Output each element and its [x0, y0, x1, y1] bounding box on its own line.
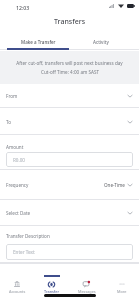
staticText: Select Date [6, 210, 31, 216]
staticText: One-Time [104, 182, 125, 188]
staticText: R0.00 [13, 157, 25, 163]
staticText: Transfer [44, 289, 60, 294]
staticText: After cut-off, transfers will post next … [16, 60, 123, 66]
button[interactable]: Make a Transfer [7, 35, 69, 49]
button[interactable]: Messages [69, 263, 104, 300]
staticText: Activity [93, 39, 109, 45]
button[interactable]: From [0, 84, 139, 108]
button[interactable]: Frequency [0, 170, 139, 200]
staticText: 12:03 [16, 4, 30, 11]
staticText: Transfer Description [6, 233, 50, 239]
button[interactable]: More [104, 263, 139, 300]
staticText: Messages [78, 289, 96, 294]
staticText: Frequency [6, 182, 29, 188]
staticText: Amount [6, 144, 24, 150]
staticText: Enter Text [13, 249, 35, 255]
button[interactable]: Accounts [0, 263, 34, 300]
staticText: Cut-off Time: 4:00 am SAST [41, 69, 99, 75]
staticText: More [117, 289, 127, 294]
staticText: Transfers [54, 17, 86, 27]
button[interactable]: R0.00 [6, 152, 133, 167]
staticText: To [6, 119, 12, 125]
staticText: Accounts [9, 289, 26, 294]
button[interactable]: Activity [69, 35, 132, 49]
button[interactable]: Enter Text [6, 244, 133, 260]
button[interactable]: Transfer [34, 263, 69, 300]
staticText: Make a Transfer [21, 39, 56, 45]
button[interactable]: To [0, 108, 139, 135]
staticText: From [6, 93, 18, 99]
button[interactable]: Select Date [0, 200, 139, 226]
